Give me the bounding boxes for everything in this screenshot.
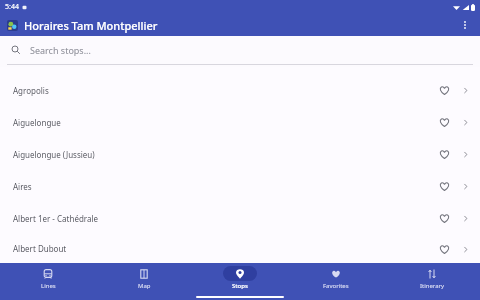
button[interactable]: Open stop details bbox=[456, 209, 474, 227]
staticText: Map bbox=[138, 282, 151, 290]
button[interactable]: More options bbox=[454, 14, 476, 36]
staticText: Favorites bbox=[323, 282, 349, 290]
button[interactable]: Add to favorites bbox=[434, 112, 454, 132]
button[interactable]: Open stop details bbox=[456, 240, 474, 258]
button[interactable]: Agropolis bbox=[0, 74, 480, 106]
staticText: Lines bbox=[41, 282, 56, 290]
button[interactable]: Aiguelongue (Jussieu) bbox=[0, 138, 480, 170]
button[interactable]: Open stop details bbox=[456, 113, 474, 131]
other: Search bbox=[11, 45, 21, 55]
button[interactable]: Add to favorites bbox=[434, 176, 454, 196]
button[interactable]: Itinerary bbox=[384, 263, 480, 293]
staticText: Aiguelongue bbox=[13, 117, 434, 128]
button[interactable]: Albert Dubout bbox=[0, 234, 480, 263]
staticText: Stops bbox=[232, 282, 248, 290]
staticText: 5:44 bbox=[5, 2, 19, 12]
button[interactable]: Open stop details bbox=[456, 177, 474, 195]
button[interactable]: Open stop details bbox=[456, 145, 474, 163]
button[interactable]: Map bbox=[96, 263, 192, 293]
button[interactable]: Lines bbox=[0, 263, 96, 293]
button[interactable]: Aires bbox=[0, 170, 480, 202]
button[interactable]: Aiguelongue bbox=[0, 106, 480, 138]
button[interactable]: Open stop details bbox=[456, 81, 474, 99]
button[interactable]: Add to favorites bbox=[434, 144, 454, 164]
staticText: Albert Dubout bbox=[13, 243, 434, 254]
staticText: Albert 1er - Cathédrale bbox=[13, 213, 434, 224]
staticText: Horaires Tam Montpellier bbox=[24, 18, 158, 33]
staticText: Agropolis bbox=[13, 85, 434, 96]
button[interactable]: Search bbox=[0, 36, 480, 64]
button[interactable]: Stops bbox=[192, 263, 288, 293]
staticText: Aiguelongue (Jussieu) bbox=[13, 149, 434, 160]
button[interactable]: Albert 1er - Cathédrale bbox=[0, 202, 480, 234]
staticText: Search stops... bbox=[30, 44, 91, 56]
staticText: Aires bbox=[13, 181, 434, 192]
button[interactable]: Add to favorites bbox=[434, 208, 454, 228]
button[interactable]: Add to favorites bbox=[434, 239, 454, 259]
button[interactable]: Add to favorites bbox=[434, 80, 454, 100]
staticText: Itinerary bbox=[420, 282, 445, 290]
button[interactable]: Favorites bbox=[288, 263, 384, 293]
